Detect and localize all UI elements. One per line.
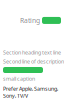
staticText: Second line of description: [3, 58, 64, 65]
staticText: Prefer Apple, Samsung, Sony, TV/V: [3, 85, 58, 99]
staticText: small caption: [3, 75, 35, 82]
staticText: Section heading text line: [3, 49, 61, 56]
staticText: Rating: [20, 16, 40, 25]
